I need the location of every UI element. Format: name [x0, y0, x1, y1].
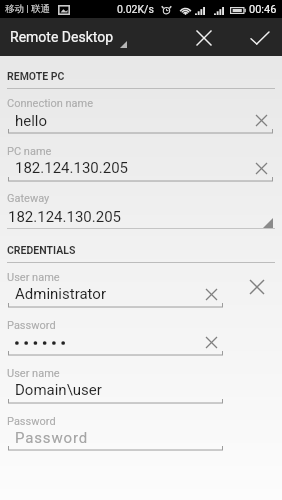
- staticText: Administrator: [15, 285, 106, 303]
- staticText: Password: [7, 415, 56, 428]
- staticText: Domain\user: [15, 381, 102, 399]
- button[interactable]: Clear text: [200, 283, 222, 305]
- staticText: hello: [15, 112, 48, 130]
- staticText: PC name: [7, 145, 52, 158]
- staticText: REMOTE PC: [7, 70, 65, 82]
- button[interactable]: Clear text: [250, 157, 272, 179]
- staticText: Password: [7, 319, 56, 332]
- staticText: 182.124.130.205: [8, 208, 122, 226]
- button[interactable]: 182.124.130.205: [6, 204, 275, 228]
- button[interactable]: Done: [241, 18, 279, 56]
- button[interactable]: Remote Desktop: [6, 18, 131, 56]
- button[interactable]: Clear text: [250, 109, 272, 131]
- staticText: 00:46: [249, 3, 277, 16]
- button[interactable]: Clear text: [200, 331, 222, 353]
- staticText: User name: [7, 367, 60, 380]
- staticText: Gateway: [7, 192, 50, 205]
- staticText: 182.124.130.205: [15, 159, 129, 177]
- staticText: Connection name: [7, 97, 94, 110]
- staticText: 移动 | 联通: [5, 3, 51, 15]
- staticText: 0.02K/s: [117, 3, 154, 15]
- staticText: User name: [7, 271, 60, 284]
- button[interactable]: Remove credential: [245, 275, 269, 299]
- button[interactable]: Cancel: [185, 18, 223, 56]
- staticText: CREDENTIALS: [7, 244, 76, 256]
- staticText: Remote Desktop: [10, 29, 114, 45]
- staticText: Password: [15, 429, 89, 447]
